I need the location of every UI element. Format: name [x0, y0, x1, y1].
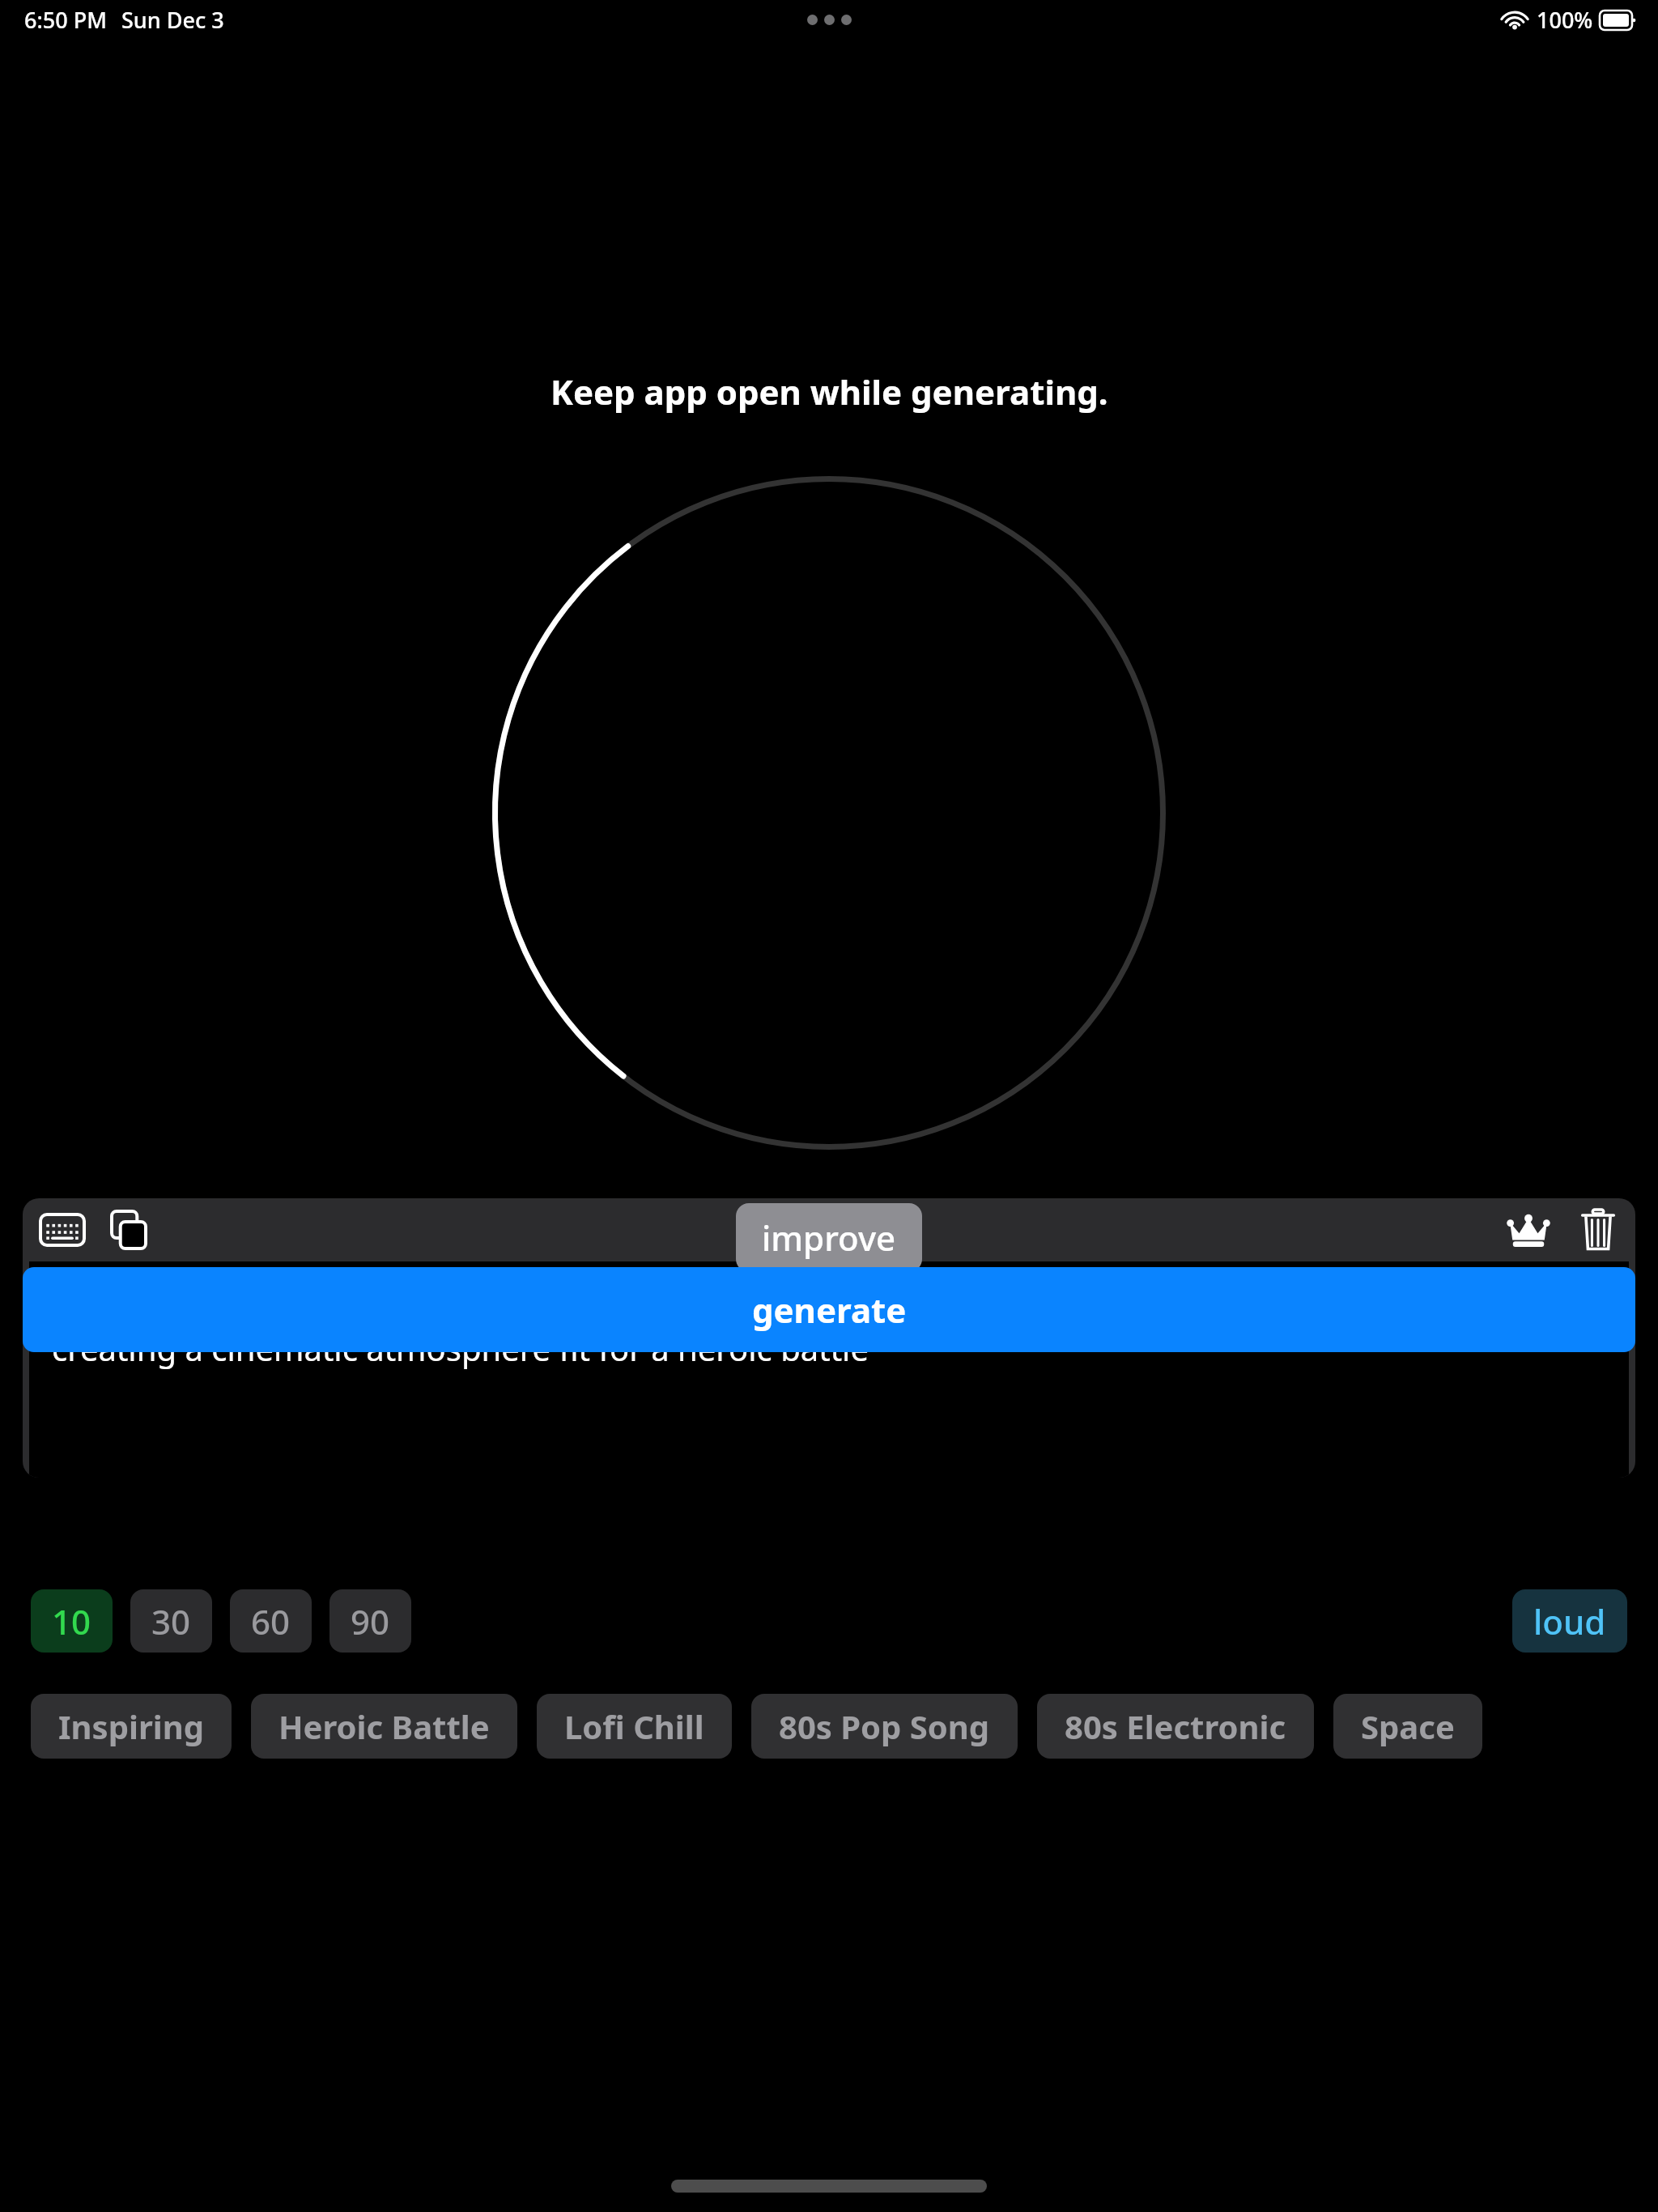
button[interactable]: 80s Electronic — [1037, 1694, 1314, 1759]
staticText: 100% — [1537, 5, 1593, 35]
staticText: improve — [762, 1214, 896, 1261]
staticText: 90 — [351, 1598, 390, 1644]
button[interactable]: generate — [23, 1267, 1635, 1352]
button[interactable]: 30 — [130, 1589, 212, 1653]
button[interactable]: Keyboard — [37, 1205, 87, 1255]
staticText: 60 — [251, 1598, 291, 1644]
staticText: 10 — [52, 1598, 91, 1644]
button[interactable]: Premium — [1506, 1207, 1551, 1253]
staticText: generate — [752, 1287, 907, 1333]
button[interactable]: improve — [736, 1203, 922, 1272]
button[interactable]: Heroic Battle — [251, 1694, 517, 1759]
button[interactable]: Copy — [105, 1206, 152, 1253]
staticText: 6:50 PM — [24, 5, 107, 35]
button[interactable]: Delete — [1575, 1207, 1621, 1253]
button[interactable]: Lofi Chill — [537, 1694, 732, 1759]
button[interactable]: 80s Pop Song — [751, 1694, 1018, 1759]
staticText: Sun Dec 3 — [121, 5, 224, 35]
button[interactable]: 90 — [329, 1589, 411, 1653]
staticText: Heroic Battle — [278, 1704, 490, 1748]
staticText: Keep app open while generating. — [551, 368, 1108, 415]
button[interactable]: Inspiring — [31, 1694, 232, 1759]
staticText: Space — [1361, 1704, 1455, 1748]
staticText: 30 — [151, 1598, 191, 1644]
staticText: 80s Electronic — [1065, 1704, 1286, 1748]
button[interactable]: loud — [1512, 1589, 1627, 1653]
staticText: loud — [1533, 1598, 1606, 1644]
staticText: Inspiring — [58, 1704, 204, 1748]
staticText: 80s Pop Song — [779, 1704, 990, 1748]
staticText: A grand orchestral arrangement with thun… — [52, 1279, 1606, 1370]
button[interactable]: 60 — [230, 1589, 312, 1653]
button[interactable]: Space — [1333, 1694, 1482, 1759]
staticText: Lofi Chill — [564, 1704, 704, 1748]
button[interactable]: 10 — [31, 1589, 113, 1653]
